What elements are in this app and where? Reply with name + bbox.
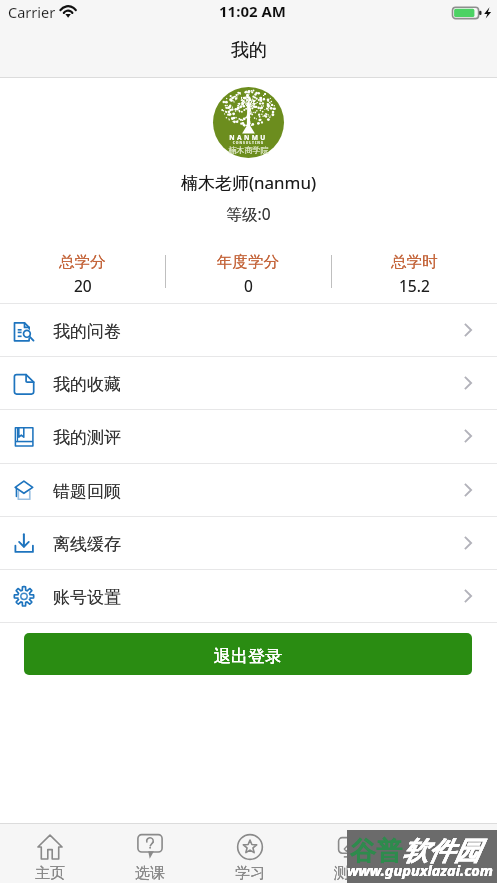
staticText: 我的 (231, 39, 267, 62)
staticText: 我的问卷 (53, 321, 121, 342)
staticText: 学习 (235, 864, 265, 883)
staticText: NANMU (213, 133, 284, 142)
staticText: CONSULTING (213, 140, 284, 145)
button[interactable]: 学习 (200, 824, 299, 883)
button[interactable]: 总学分 (0, 252, 165, 296)
staticText: 15.2 (399, 275, 430, 296)
staticText: 错题回顾 (53, 481, 121, 502)
staticText: 我的 (433, 864, 463, 883)
staticText: 等级:0 (0, 203, 497, 224)
button[interactable]: 离线缓存 (0, 516, 497, 569)
staticText: 年度学分 (217, 252, 279, 272)
staticText: 楠木老师(nanmu) (0, 171, 497, 194)
staticText: 选课 (135, 864, 165, 883)
staticText: 总学分 (59, 252, 106, 272)
button[interactable]: 测评 (299, 824, 398, 883)
staticText: 我的问卷 (53, 321, 121, 342)
staticText: 选课 (135, 864, 165, 883)
staticText: 离线缓存 (53, 534, 121, 555)
staticText: 我的收藏 (53, 374, 121, 395)
staticText: Carrier (8, 2, 56, 22)
button[interactable]: 主页 (0, 824, 100, 883)
button[interactable]: 我的问卷 (0, 303, 497, 356)
staticText: 总学时 (391, 252, 438, 272)
staticText: 20 (74, 275, 92, 296)
staticText: 谷普 (350, 835, 402, 868)
staticText: 软件园 (402, 835, 480, 868)
staticText: 我的 (433, 864, 463, 883)
staticText: 错题回顾 (53, 481, 121, 502)
staticText: 我的收藏 (53, 374, 121, 395)
button[interactable]: 我的 (398, 824, 497, 883)
staticText: 年度学分 (217, 252, 279, 272)
staticText: 学习 (235, 864, 265, 883)
staticText: www.gupuxlazai.com (347, 860, 493, 880)
button[interactable]: 账号设置 (0, 569, 497, 622)
staticText: 总学分 (59, 252, 106, 272)
staticText: 楠木商学院 (213, 145, 284, 155)
staticText: 主页 (35, 864, 65, 883)
staticText: 11:02 AM (219, 1, 286, 21)
staticText: 退出登录 (214, 646, 282, 667)
staticText: 测评 (334, 864, 364, 883)
staticText: 离线缓存 (53, 534, 121, 555)
staticText: 0 (244, 275, 253, 296)
staticText: 退出登录 (214, 646, 282, 667)
staticText: 账号设置 (53, 587, 121, 608)
staticText: 等级:0 (0, 203, 497, 224)
staticText: 测评 (334, 864, 364, 883)
button[interactable]: 退出登录 (24, 633, 472, 675)
staticText: 20 (74, 275, 92, 296)
button[interactable]: 错题回顾 (0, 463, 497, 516)
staticText: www.gupuxlazai.com (347, 860, 493, 880)
staticText: 0 (244, 275, 253, 296)
button[interactable]: 选课 (100, 824, 200, 883)
staticText: 软件园 (402, 835, 480, 868)
button[interactable]: 总学时 (331, 252, 497, 296)
staticText: 我的测评 (53, 427, 121, 448)
button[interactable]: 我的测评 (0, 409, 497, 462)
button[interactable]: Profile avatar (213, 87, 284, 158)
staticText: 15.2 (399, 275, 430, 296)
staticText: 谷普 (350, 835, 402, 868)
button[interactable]: 我的收藏 (0, 356, 497, 409)
staticText: 账号设置 (53, 587, 121, 608)
staticText: 我的 (231, 39, 267, 62)
staticText: 我的测评 (53, 427, 121, 448)
staticText: 总学时 (391, 252, 438, 272)
staticText: 楠木老师(nanmu) (0, 171, 497, 194)
button[interactable]: 年度学分 (165, 252, 331, 296)
staticText: 主页 (35, 864, 65, 883)
